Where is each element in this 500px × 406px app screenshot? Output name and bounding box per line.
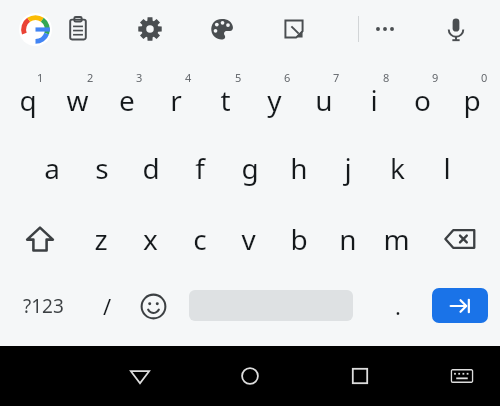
button[interactable]: Switch keyboard [440, 354, 484, 398]
button[interactable]: l [422, 134, 471, 202]
staticText: f [195, 149, 205, 187]
staticText: i [370, 81, 378, 119]
button[interactable]: Back [118, 354, 162, 398]
staticText: z [94, 220, 108, 258]
staticText: h [290, 149, 308, 187]
staticText: ?123 [23, 293, 64, 319]
button[interactable]: Recents [338, 354, 382, 398]
button[interactable]: ?123 [5, 281, 81, 331]
button[interactable]: Shift [12, 206, 68, 272]
button[interactable]: s [77, 134, 126, 202]
button[interactable]: Enter [432, 288, 488, 323]
button[interactable]: b [274, 206, 323, 272]
button[interactable]: Home [228, 354, 272, 398]
button[interactable]: / [83, 281, 131, 331]
button[interactable]: e [102, 62, 151, 130]
staticText: b [290, 220, 308, 258]
staticText: 7 [333, 70, 340, 85]
button[interactable]: h [274, 134, 323, 202]
button[interactable]: n [323, 206, 372, 272]
staticText: 2 [87, 70, 94, 85]
button[interactable]: Settings [132, 11, 168, 47]
staticText: / [103, 291, 112, 321]
button[interactable]: More options [367, 11, 403, 47]
staticText: s [95, 149, 109, 187]
button[interactable]: Sticker [276, 11, 312, 47]
staticText: 4 [185, 70, 192, 85]
staticText: x [143, 220, 158, 258]
button[interactable]: p [447, 62, 496, 130]
staticText: u [315, 81, 333, 119]
staticText: c [193, 220, 207, 258]
staticText: g [241, 149, 259, 187]
button[interactable]: Voice input [438, 11, 474, 47]
button[interactable]: q [3, 62, 52, 130]
staticText: 0 [481, 70, 488, 85]
button[interactable]: Themes [204, 11, 240, 47]
staticText: 1 [37, 70, 44, 85]
button[interactable]: k [373, 134, 422, 202]
staticText: e [119, 81, 135, 119]
staticText: q [19, 81, 37, 119]
staticText: l [443, 149, 451, 187]
staticText: p [463, 81, 481, 119]
staticText: n [339, 220, 357, 258]
button[interactable]: o [398, 62, 447, 130]
staticText: v [241, 220, 256, 258]
staticText: k [390, 149, 405, 187]
button[interactable]: w [53, 62, 102, 130]
staticText: a [44, 149, 60, 187]
staticText: t [220, 81, 231, 119]
button[interactable]: f [175, 134, 224, 202]
button[interactable]: a [27, 134, 76, 202]
staticText: w [66, 81, 89, 119]
staticText: 9 [432, 70, 439, 85]
button[interactable]: t [201, 62, 250, 130]
staticText: 3 [136, 70, 143, 85]
staticText: 5 [235, 70, 242, 85]
button[interactable]: x [126, 206, 175, 272]
staticText: . [395, 291, 401, 321]
staticText: j [344, 149, 352, 187]
button[interactable]: m [372, 206, 421, 272]
button[interactable]: c [175, 206, 224, 272]
staticText: 8 [383, 70, 390, 85]
button[interactable]: y [250, 62, 299, 130]
button[interactable]: r [151, 62, 200, 130]
button[interactable]: j [323, 134, 372, 202]
staticText: o [414, 81, 431, 119]
button[interactable]: u [299, 62, 348, 130]
button[interactable]: . [376, 281, 420, 331]
button[interactable]: g [225, 134, 274, 202]
staticText: 6 [284, 70, 291, 85]
button[interactable]: Backspace [432, 206, 488, 272]
staticText: r [170, 81, 182, 119]
staticText: d [142, 149, 160, 187]
staticText: m [383, 220, 410, 258]
button[interactable]: d [126, 134, 175, 202]
button[interactable]: Google search [19, 13, 52, 46]
button[interactable]: Emoji [131, 281, 175, 331]
button[interactable]: z [76, 206, 125, 272]
button[interactable]: Clipboard [60, 11, 96, 47]
button[interactable]: i [349, 62, 398, 130]
staticText: y [267, 81, 282, 119]
button[interactable]: v [224, 206, 273, 272]
